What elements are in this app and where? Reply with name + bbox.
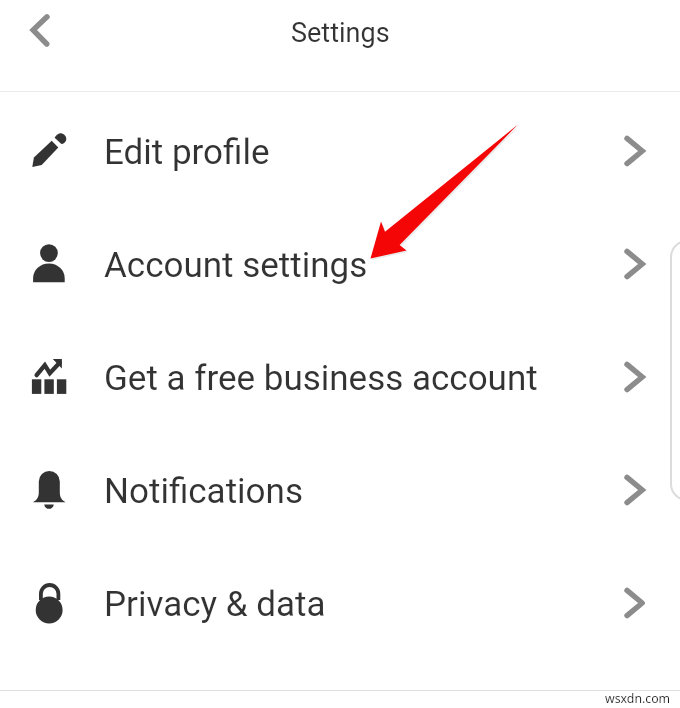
staticText: Privacy & data bbox=[104, 584, 326, 625]
button[interactable]: Get a free business account bbox=[0, 320, 680, 433]
button[interactable]: Privacy & data bbox=[0, 546, 680, 659]
staticText: Edit profile bbox=[104, 132, 270, 173]
staticText: wsxdn.com bbox=[605, 690, 671, 707]
button[interactable]: Notifications bbox=[0, 433, 680, 546]
button[interactable]: Account settings bbox=[0, 207, 680, 320]
button[interactable]: Back bbox=[8, 0, 72, 61]
staticText: Get a free business account bbox=[104, 358, 538, 399]
staticText: Notifications bbox=[104, 471, 303, 512]
staticText: Settings bbox=[291, 17, 390, 49]
staticText: Account settings bbox=[104, 245, 368, 286]
button[interactable]: Edit profile bbox=[0, 94, 680, 207]
